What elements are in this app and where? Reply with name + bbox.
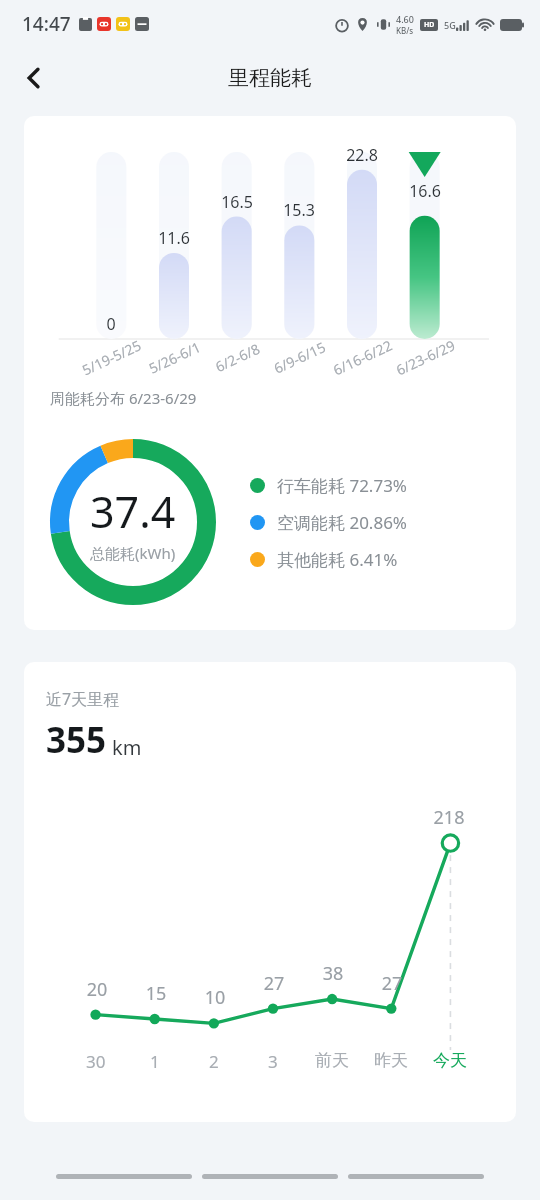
staticText: 10	[192, 985, 238, 1010]
staticText: 27	[251, 971, 297, 996]
staticText: 218	[426, 805, 472, 830]
button[interactable]	[202, 1174, 338, 1179]
staticText: 27	[369, 971, 415, 996]
staticText: 前天	[315, 1050, 349, 1071]
staticText: 20	[74, 977, 120, 1002]
staticText: 4.60	[396, 13, 414, 25]
staticText: 38	[310, 961, 356, 986]
button[interactable]: 30	[66, 1050, 126, 1073]
staticText: 355	[46, 716, 107, 764]
button[interactable]: 其他能耗 6.41%	[250, 548, 398, 571]
staticText: 5/26-6/1	[146, 337, 203, 378]
staticText: 0	[87, 313, 135, 335]
staticText: 14:47	[22, 11, 71, 37]
staticText: 空调能耗 20.86%	[277, 511, 407, 534]
button[interactable]: 1	[125, 1050, 185, 1073]
staticText: 总能耗(kWh)	[90, 543, 176, 563]
button[interactable]: 前天	[302, 1050, 362, 1071]
button[interactable]: Back	[10, 54, 58, 102]
button[interactable]: 行车能耗 72.73%	[250, 474, 407, 497]
staticText: 近7天里程	[46, 688, 120, 710]
staticText: 16.6	[401, 180, 449, 202]
staticText: km	[112, 734, 142, 761]
staticText: 3	[268, 1050, 278, 1073]
staticText: 周能耗分布 6/23-6/29	[50, 388, 197, 408]
button[interactable]: 2	[184, 1050, 244, 1073]
staticText: 30	[86, 1050, 106, 1073]
staticText: KB/s	[396, 25, 414, 36]
staticText: 行车能耗 72.73%	[277, 474, 407, 497]
staticText: 6/16-6/22	[330, 336, 395, 379]
staticText: 1	[150, 1050, 160, 1073]
button[interactable]	[56, 1174, 192, 1179]
button[interactable]: 空调能耗 20.86%	[250, 511, 407, 534]
staticText: 6/2-6/8	[212, 339, 263, 376]
staticText: 2	[209, 1050, 219, 1073]
staticText: 其他能耗 6.41%	[277, 548, 398, 571]
staticText: 今天	[433, 1050, 467, 1071]
staticText: 6/23-6/29	[393, 336, 458, 379]
staticText: 昨天	[374, 1050, 408, 1071]
staticText: 6/9-6/15	[271, 337, 328, 378]
staticText: 15	[133, 981, 179, 1006]
staticText: 22.8	[338, 144, 386, 166]
button[interactable]: 昨天	[361, 1050, 421, 1071]
staticText: 5/19-5/25	[79, 336, 144, 379]
staticText: 15.3	[275, 199, 323, 221]
button[interactable]	[348, 1174, 484, 1179]
staticText: 37.4	[90, 482, 176, 541]
button[interactable]: 今天	[420, 1050, 480, 1071]
staticText: 里程能耗	[228, 65, 312, 91]
staticText: HD	[424, 20, 435, 30]
button[interactable]: 3	[243, 1050, 303, 1073]
staticText: 5G	[444, 19, 456, 31]
staticText: 16.5	[213, 191, 261, 213]
staticText: 11.6	[150, 227, 198, 249]
